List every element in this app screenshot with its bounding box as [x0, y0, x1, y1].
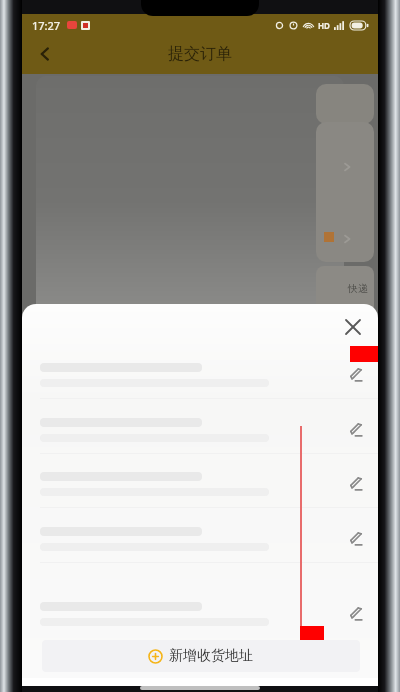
button[interactable]: Edit address	[334, 516, 378, 562]
button[interactable]: Edit address	[334, 352, 378, 398]
button[interactable]: Edit address	[334, 461, 378, 507]
staticText: 快递	[348, 282, 368, 295]
button[interactable]: 新增收货地址	[42, 640, 360, 672]
staticText: 提交订单	[168, 44, 232, 64]
button[interactable]: Back	[28, 37, 62, 71]
button[interactable]: Edit address	[22, 516, 378, 562]
button[interactable]: Edit address	[334, 591, 378, 637]
button[interactable]: Edit address	[22, 352, 378, 398]
button[interactable]: Edit address	[22, 407, 378, 453]
button[interactable]: Edit address	[334, 407, 378, 453]
staticText: HD	[318, 20, 330, 31]
button[interactable]: Close	[338, 312, 368, 342]
staticText: 新增收货地址	[169, 647, 253, 665]
button[interactable]: Edit address	[22, 461, 378, 507]
button[interactable]: Edit address	[22, 591, 378, 637]
staticText: 17:27	[32, 18, 61, 33]
